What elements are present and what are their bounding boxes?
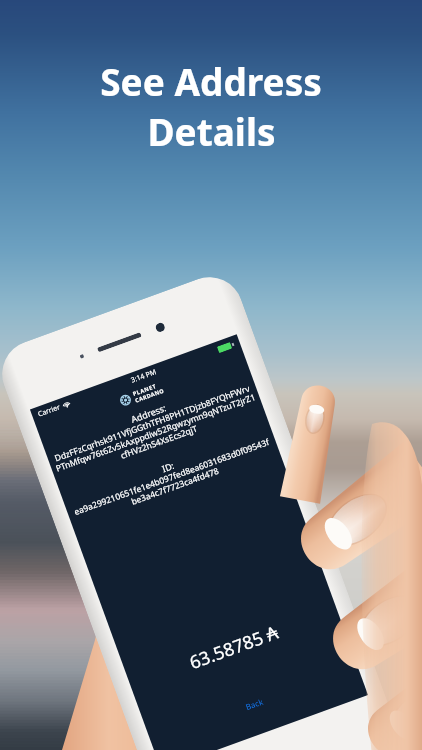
staticText: ea9a299210651fe1e4b097fed8ea6031683d0f09…: [66, 434, 280, 530]
staticText: Address:: [43, 370, 254, 456]
button[interactable]: Back: [235, 690, 273, 718]
button[interactable]: Carrier: [30, 334, 368, 750]
staticText: Details: [147, 106, 276, 156]
staticText: Carrier: [37, 402, 62, 420]
staticText: PLANET: [132, 382, 157, 397]
staticText: See Address: [100, 56, 322, 106]
staticText: DdzFFzCqrhsk911VfjGGthTFH8PH1TDjzb8FYQhF…: [47, 380, 264, 485]
staticText: ID:: [62, 423, 273, 510]
staticText: 63.58785 ₳: [126, 598, 341, 697]
staticText: 3:14 PM: [130, 367, 158, 386]
staticText: CARDANO: [134, 386, 165, 404]
